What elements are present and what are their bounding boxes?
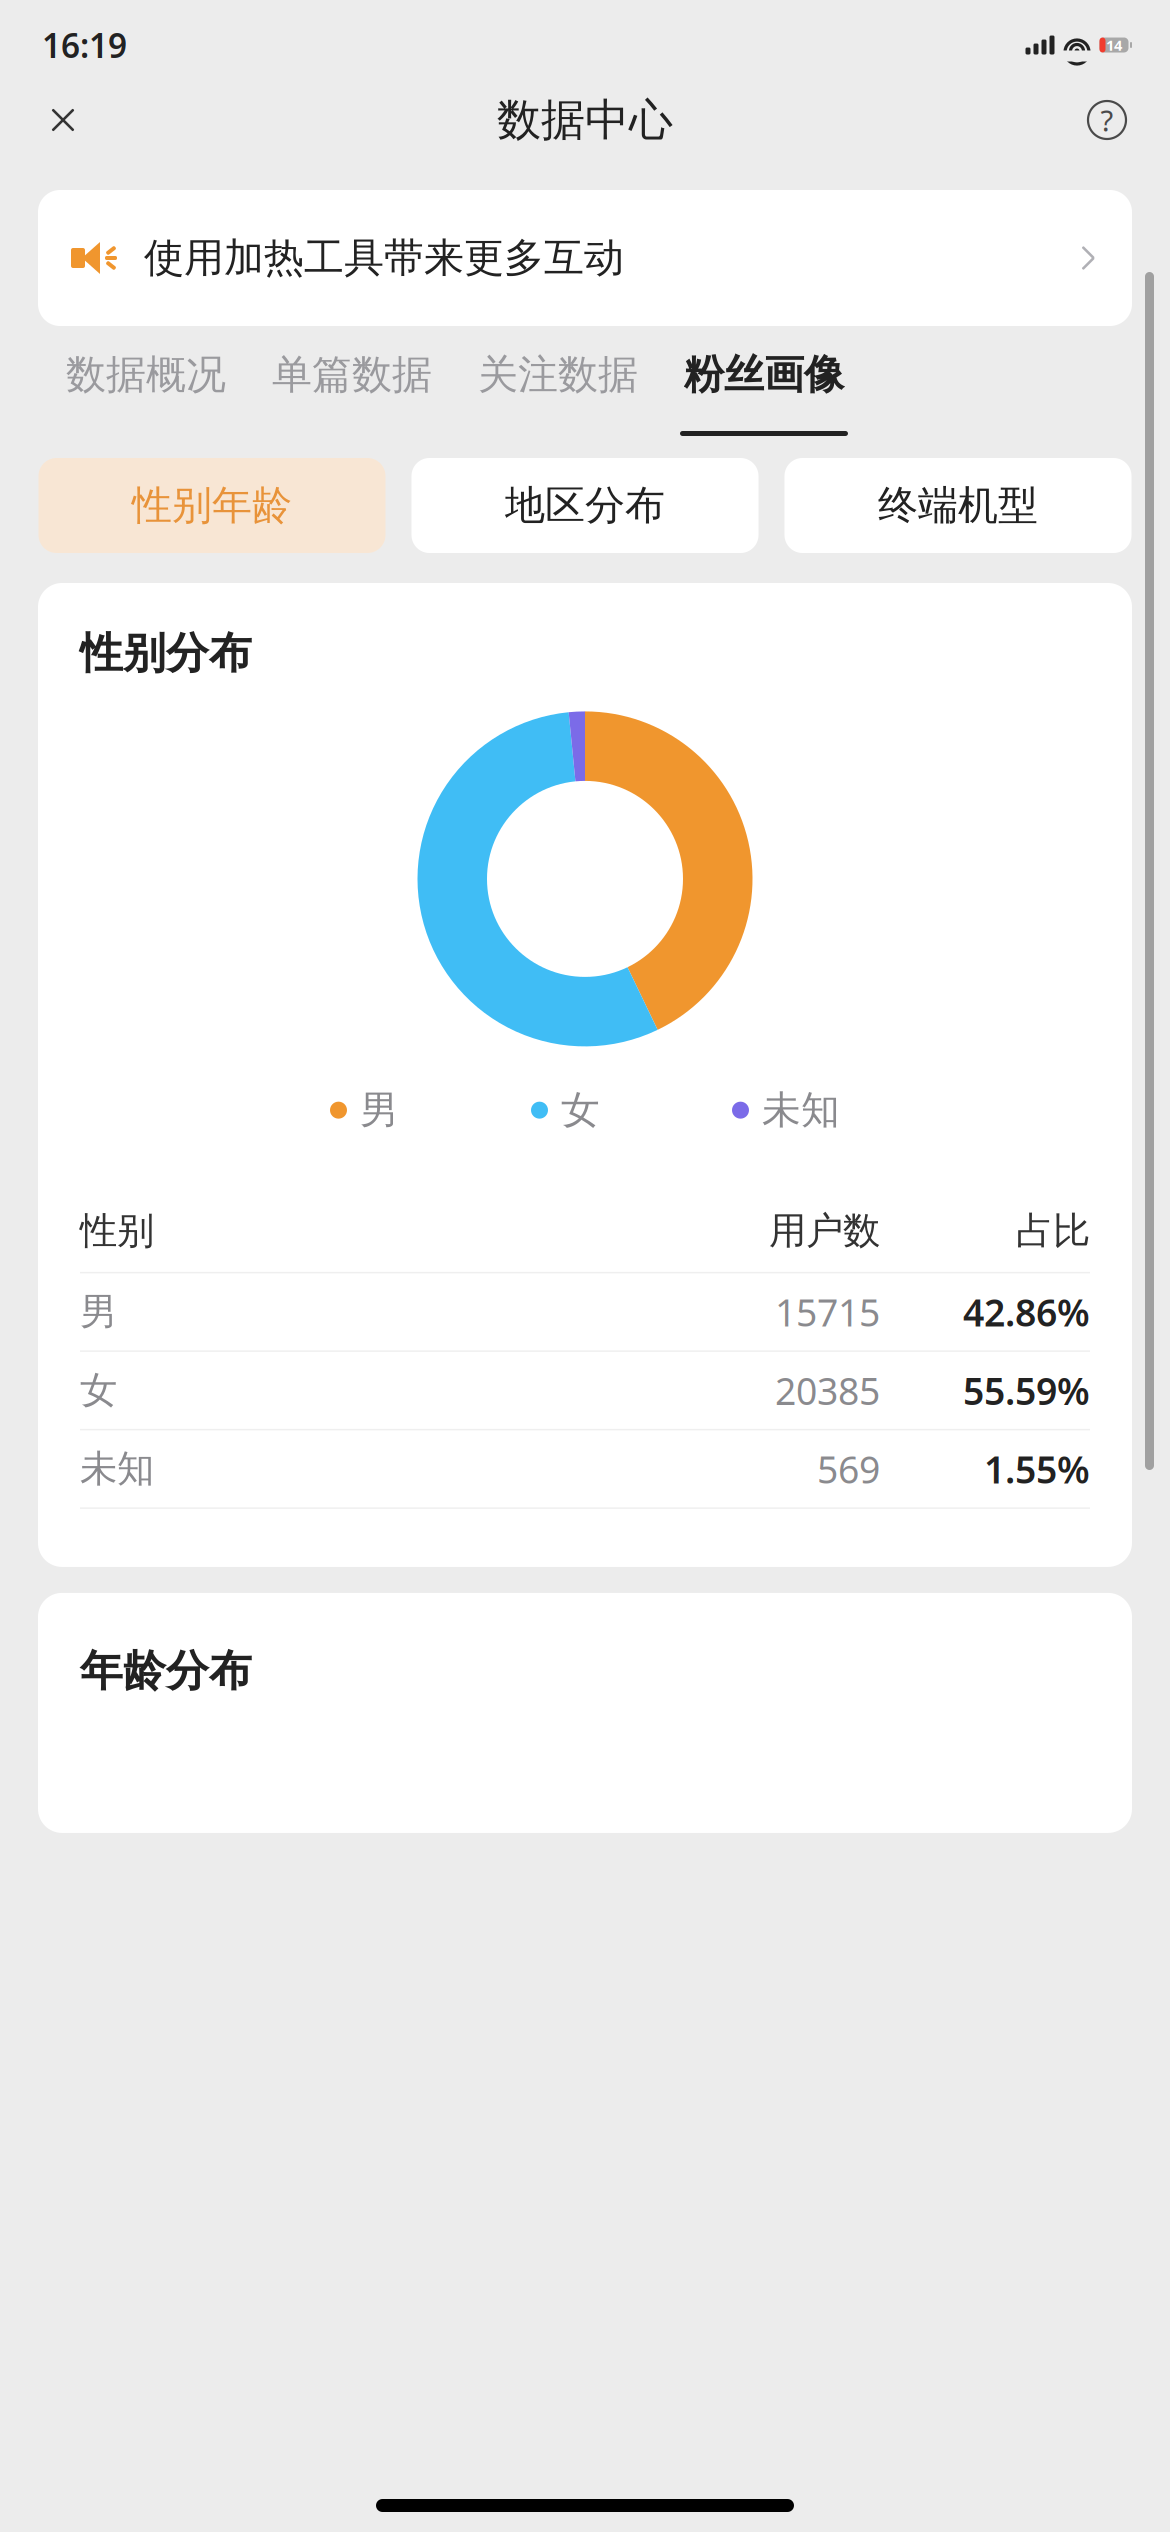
staticText: 用户数 — [769, 1208, 880, 1254]
staticText: 性别分布 — [80, 627, 252, 679]
staticText: 未知 — [80, 1446, 154, 1492]
staticText: 1.55% — [984, 1444, 1090, 1494]
staticText: 粉丝画像 — [684, 350, 844, 399]
staticText: 55.59% — [963, 1366, 1090, 1415]
staticText: 569 — [817, 1444, 880, 1494]
button[interactable]: 终端机型 — [784, 458, 1131, 553]
staticText: 地区分布 — [505, 481, 665, 530]
button[interactable]: 粉丝画像 — [661, 350, 867, 436]
button[interactable]: 帮助 — [1078, 91, 1136, 149]
staticText: 女 — [80, 1367, 117, 1413]
staticText: 数据概况 — [66, 350, 226, 399]
button[interactable]: 使用加热工具带来更多互动 — [38, 190, 1132, 326]
staticText: 14 — [1106, 35, 1122, 55]
staticText: 使用加热工具带来更多互动 — [144, 233, 624, 282]
staticText: 终端机型 — [878, 481, 1038, 530]
staticText: 女 — [561, 1086, 600, 1134]
staticText: 单篇数据 — [272, 350, 432, 399]
button[interactable]: 关注数据 — [455, 350, 661, 436]
staticText: 占比 — [1016, 1208, 1090, 1254]
staticText: 男 — [360, 1086, 399, 1134]
staticText: 年龄分布 — [80, 1645, 252, 1697]
staticText: 数据中心 — [497, 93, 673, 147]
button[interactable]: 单篇数据 — [249, 350, 455, 436]
button[interactable]: 数据概况 — [43, 350, 249, 436]
staticText: 性别年龄 — [132, 481, 292, 530]
button[interactable]: 关闭 — [34, 91, 92, 149]
staticText: 性别 — [80, 1208, 154, 1254]
button[interactable]: 性别年龄 — [38, 458, 385, 553]
staticText: 未知 — [762, 1086, 840, 1134]
button[interactable]: 地区分布 — [411, 458, 758, 553]
staticText: 20385 — [775, 1366, 880, 1415]
staticText: 15715 — [775, 1287, 880, 1337]
staticText: 男 — [80, 1289, 117, 1335]
staticText: ? — [1100, 100, 1113, 139]
staticText: 16:19 — [42, 23, 127, 67]
staticText: 42.86% — [963, 1287, 1090, 1337]
staticText: 关注数据 — [478, 350, 638, 399]
